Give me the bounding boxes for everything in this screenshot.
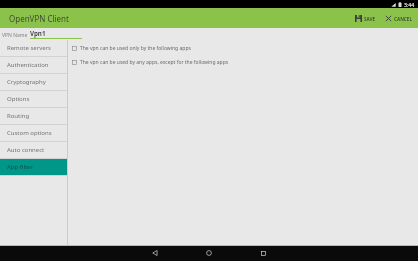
button[interactable]: CANCEL: [384, 13, 413, 24]
button[interactable]: Auto connect: [0, 142, 67, 158]
staticText: SAVE: [364, 16, 376, 22]
button[interactable]: Remote servers: [0, 40, 67, 56]
button[interactable]: Authentication: [0, 57, 67, 73]
button[interactable]: SAVE: [354, 13, 377, 24]
button[interactable]: Cryptography: [0, 74, 67, 90]
staticText: App filter: [7, 163, 33, 171]
staticText: Custom options: [7, 129, 52, 137]
button[interactable]: The vpn can be used by any apps, except …: [70, 58, 418, 67]
button[interactable]: Home: [195, 245, 223, 261]
staticText: Routing: [7, 112, 30, 120]
button[interactable]: Vpn1: [30, 29, 82, 39]
button[interactable]: Recent apps: [249, 245, 277, 261]
button[interactable]: Options: [0, 91, 67, 107]
staticText: The vpn can be used only by the followin…: [80, 45, 191, 52]
staticText: Auto connect: [7, 146, 45, 154]
button[interactable]: Routing: [0, 108, 67, 124]
button[interactable]: Custom options: [0, 125, 67, 141]
staticText: 3:44: [404, 1, 415, 8]
button[interactable]: App filter: [0, 159, 67, 175]
button[interactable]: Back: [141, 245, 169, 261]
staticText: Remote servers: [7, 44, 51, 52]
staticText: Cryptography: [7, 78, 46, 86]
staticText: Vpn1: [30, 29, 46, 37]
staticText: The vpn can be used by any apps, except …: [80, 59, 229, 66]
staticText: Options: [7, 95, 30, 103]
staticText: Authentication: [7, 61, 49, 69]
staticText: CANCEL: [394, 16, 412, 22]
staticText: OpenVPN Client: [9, 13, 69, 24]
button[interactable]: The vpn can be used only by the followin…: [70, 44, 418, 53]
staticText: VPN Name: [2, 32, 28, 39]
